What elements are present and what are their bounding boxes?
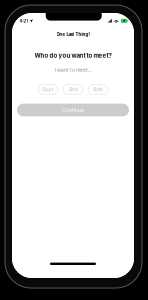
staticText: Girls: [68, 87, 77, 92]
staticText: I want to meet...: [55, 67, 91, 73]
staticText: Who do you want to meet?: [34, 52, 111, 59]
staticText: 4:21: [19, 18, 28, 23]
button[interactable]: Girls: [63, 84, 83, 95]
staticText: Both: [93, 87, 103, 92]
button[interactable]: Continue: [17, 104, 129, 116]
staticText: Guys: [42, 87, 53, 92]
staticText: Continue: [62, 107, 84, 113]
staticText: One Last Thing!: [56, 32, 89, 37]
button[interactable]: Guys: [38, 84, 58, 95]
button[interactable]: Both: [88, 84, 108, 95]
